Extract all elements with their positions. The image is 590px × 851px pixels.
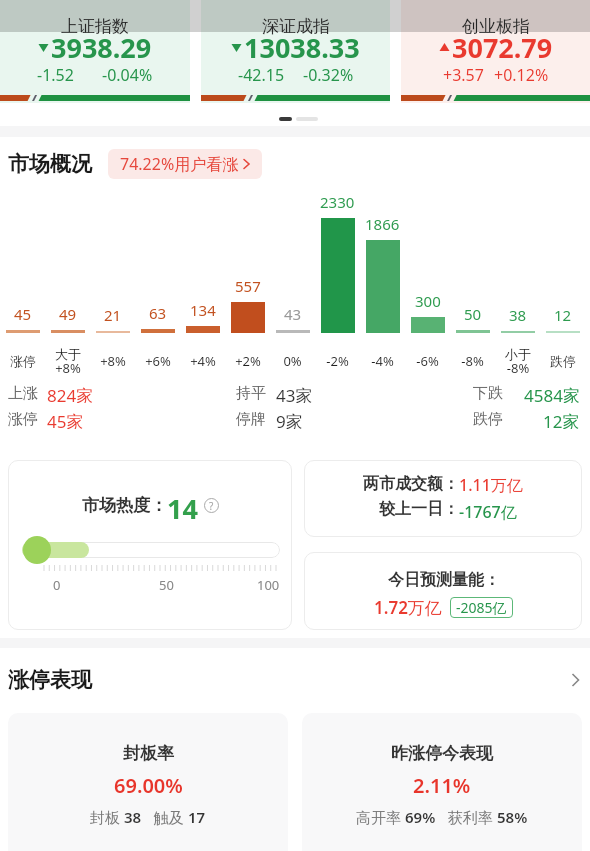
staticText: 获利率 xyxy=(436,807,497,827)
staticText: 0 xyxy=(53,576,61,594)
staticText: 3072.79 xyxy=(452,29,553,66)
staticText: 69.00% xyxy=(114,772,183,799)
staticText: 21 xyxy=(104,305,122,325)
staticText: 824家 xyxy=(47,384,94,403)
staticText: 跌停 xyxy=(473,410,503,429)
staticText: 38 xyxy=(509,305,527,325)
staticText: 12 xyxy=(554,305,572,325)
staticText: +0.12% xyxy=(494,64,549,86)
staticText: 12家 xyxy=(543,410,580,429)
staticText: -1767亿 xyxy=(459,501,517,523)
staticText: 昨涨停今表现 xyxy=(391,743,493,764)
button[interactable]: 上证指数 xyxy=(0,0,190,103)
staticText: 63 xyxy=(149,303,167,323)
button[interactable]: 涨停表现 xyxy=(8,666,580,694)
staticText: 557 xyxy=(235,276,261,296)
staticText: 4584家 xyxy=(524,384,580,403)
staticText: 两市成交额： xyxy=(363,474,459,494)
staticText: 50 xyxy=(464,304,482,324)
staticText: 14 xyxy=(167,490,198,520)
staticText: 触及 xyxy=(142,807,188,827)
staticText: 涨停 xyxy=(8,410,38,429)
staticText: +2% xyxy=(235,352,261,370)
staticText: 1.11万亿 xyxy=(459,474,523,496)
staticText: 较上一日： xyxy=(379,499,459,519)
staticText: 49 xyxy=(59,304,77,324)
staticText: -8% xyxy=(461,352,484,370)
staticText: 高开率 xyxy=(356,807,405,827)
staticText: 3938.29 xyxy=(51,29,152,66)
staticText: -42.15 xyxy=(238,64,285,86)
staticText: -2% xyxy=(326,352,349,370)
staticText: 市场热度： xyxy=(82,495,167,516)
staticText: 43家 xyxy=(276,384,313,403)
staticText: 封板率 xyxy=(123,743,174,764)
staticText: 封板 xyxy=(90,807,124,827)
staticText: 300 xyxy=(415,291,441,311)
button[interactable]: 创业板指 xyxy=(401,0,590,103)
staticText: 持平 xyxy=(236,384,266,403)
staticText: 100 xyxy=(257,576,280,594)
staticText: -2085亿 xyxy=(456,598,507,617)
staticText: 2.11% xyxy=(413,772,471,799)
button[interactable]: 昨涨停今表现 xyxy=(302,713,582,851)
staticText: 涨停 xyxy=(10,353,36,369)
staticText: 74.22%用户看涨 xyxy=(120,153,239,175)
staticText: 69% xyxy=(405,807,436,827)
button[interactable]: 深证成指 xyxy=(201,0,390,103)
staticText: 下跌 xyxy=(473,384,503,403)
staticText: 1.72万亿 xyxy=(374,596,442,619)
staticText: 50 xyxy=(159,576,174,594)
staticText: 今日预测量能： xyxy=(388,570,500,590)
staticText: 43 xyxy=(284,304,302,324)
staticText: 市场概况 xyxy=(8,151,92,177)
staticText: 2330 xyxy=(320,192,355,212)
staticText: 上证指数 xyxy=(61,16,129,37)
staticText: -1.52 xyxy=(37,64,74,86)
button[interactable]: 封板率 xyxy=(8,713,288,851)
staticText: 小于 -8% xyxy=(505,346,531,377)
staticText: 0% xyxy=(283,352,302,370)
staticText: 13038.33 xyxy=(244,29,360,66)
staticText: 深证成指 xyxy=(262,16,330,37)
staticText: 停牌 xyxy=(236,410,266,429)
staticText: +4% xyxy=(190,352,216,370)
staticText: 17 xyxy=(188,807,206,827)
staticText: +3.57 xyxy=(443,64,484,86)
button[interactable]: 74.22%用户看涨 xyxy=(108,149,262,179)
staticText: 1866 xyxy=(365,214,400,234)
staticText: 134 xyxy=(190,300,216,320)
staticText: +6% xyxy=(145,352,171,370)
staticText: 创业板指 xyxy=(462,16,530,37)
staticText: 大于 +8% xyxy=(55,346,81,377)
staticText: 跌停 xyxy=(550,353,576,369)
staticText: ? xyxy=(209,499,214,513)
staticText: -6% xyxy=(416,352,439,370)
staticText: -4% xyxy=(371,352,394,370)
staticText: 9家 xyxy=(276,410,303,429)
button[interactable]: 今日预测量能： xyxy=(304,552,582,630)
staticText: 45 xyxy=(14,304,32,324)
staticText: 45家 xyxy=(47,410,84,429)
staticText: 上涨 xyxy=(8,384,38,403)
button[interactable]: 两市成交额： xyxy=(304,460,582,537)
staticText: 38 xyxy=(124,807,142,827)
staticText: 涨停表现 xyxy=(8,667,92,693)
button[interactable]: 市场热度： xyxy=(8,460,292,630)
staticText: +8% xyxy=(100,352,126,370)
staticText: -0.32% xyxy=(303,64,354,86)
staticText: 58% xyxy=(497,807,528,827)
staticText: -0.04% xyxy=(102,64,153,86)
